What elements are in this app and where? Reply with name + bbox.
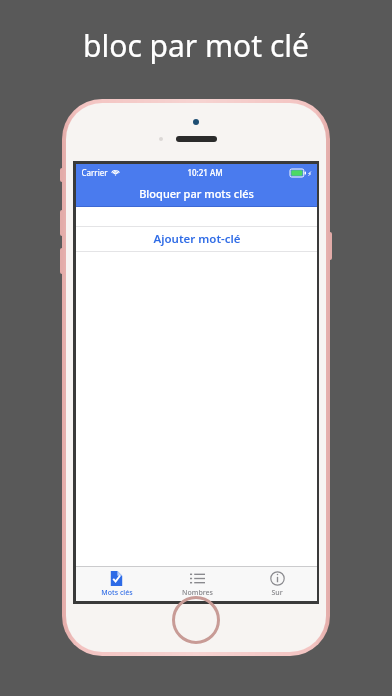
button[interactable]: Sur	[237, 567, 317, 601]
staticText: Ajouter mot-clé	[153, 231, 241, 247]
button[interactable]: Ajouter mot-clé	[76, 227, 317, 251]
staticText: Mots clés	[101, 588, 133, 598]
staticText: Sur	[271, 588, 283, 598]
staticText: Nombres	[182, 588, 213, 598]
staticText: bloc par mot clé	[83, 25, 309, 66]
staticText: Bloquer par mots clés	[139, 186, 254, 201]
other: Sur	[270, 571, 285, 586]
staticText: ⚡	[307, 170, 312, 177]
other: Nombres	[190, 571, 205, 586]
staticText: Carrier	[81, 167, 108, 178]
other: Mots clés	[109, 571, 124, 586]
staticText: 10:21 AM	[187, 167, 223, 178]
button[interactable]: Nombres	[157, 567, 237, 601]
button[interactable]: Mots clés	[76, 567, 157, 601]
